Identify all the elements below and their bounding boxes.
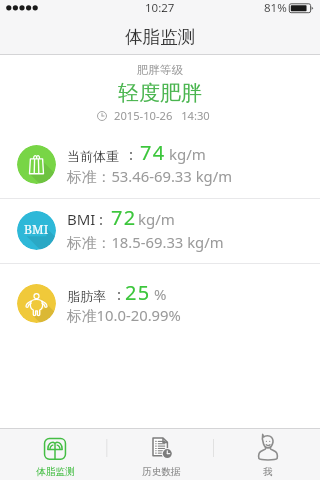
staticText: kg/m (169, 144, 206, 164)
staticText: 81% (264, 0, 287, 16)
button[interactable]: BMI (0, 199, 320, 264)
staticText: 我 (263, 466, 273, 478)
staticText: 10:27 (145, 0, 175, 16)
staticText: 72 (111, 204, 137, 231)
staticText: : (129, 144, 134, 164)
staticText: % (154, 284, 167, 304)
staticText: 肥胖等级 (137, 63, 183, 77)
button[interactable]: 体脂监测 (0, 428, 107, 480)
staticText: BMI (67, 209, 96, 229)
button[interactable]: 当前体重 (0, 131, 320, 198)
staticText: 历史数据 (142, 466, 181, 478)
staticText: : (117, 284, 122, 304)
staticText: 当前体重 (67, 148, 119, 164)
button[interactable]: 历史数据 (107, 428, 214, 480)
staticText: 标准：53.46-69.33 kg/m (67, 166, 232, 186)
button[interactable]: 我 (214, 428, 320, 480)
staticText: 体脂监测 (125, 26, 196, 48)
staticText: 标准：18.5-69.33 kg/m (67, 232, 224, 252)
button[interactable]: 脂肪率 (0, 264, 320, 346)
staticText: 脂肪率 (67, 288, 106, 304)
staticText: : (99, 209, 104, 229)
staticText: 体脂监测 (36, 466, 75, 478)
staticText: kg/m (138, 209, 175, 229)
staticText: 25 (125, 279, 151, 306)
staticText: BMI (24, 221, 49, 238)
staticText: 2015-10-26 14:30 (114, 108, 210, 123)
staticText: 轻度肥胖 (118, 80, 202, 106)
staticText: 标准10.0-20.99% (67, 305, 181, 325)
staticText: 74 (140, 139, 166, 166)
